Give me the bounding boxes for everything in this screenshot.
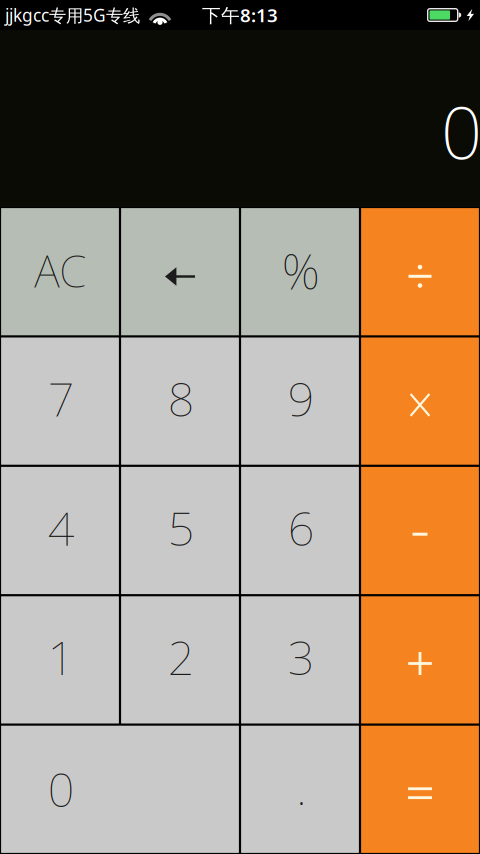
button[interactable]: 5 bbox=[121, 467, 239, 594]
button[interactable]: Divide bbox=[361, 208, 479, 335]
button[interactable]: 8 bbox=[121, 337, 239, 465]
staticText: jjkgcc专用5G专线 bbox=[5, 3, 140, 26]
staticText: 7 bbox=[48, 367, 75, 429]
button[interactable]: 9 bbox=[241, 337, 359, 465]
staticText: 0 bbox=[441, 83, 480, 179]
button[interactable]: Decimal point bbox=[241, 726, 359, 853]
button[interactable]: All Clear bbox=[1, 208, 119, 335]
button[interactable]: Equals bbox=[361, 726, 479, 853]
button[interactable]: Add bbox=[361, 596, 479, 723]
staticText: . bbox=[296, 756, 306, 818]
button[interactable]: 3 bbox=[241, 596, 359, 723]
staticText: 下午8:13 bbox=[202, 3, 278, 27]
button[interactable]: 0 bbox=[1, 726, 239, 853]
button[interactable]: Backspace bbox=[121, 208, 239, 335]
staticText: 8 bbox=[168, 367, 195, 429]
button[interactable]: 6 bbox=[241, 467, 359, 594]
staticText: % bbox=[282, 239, 320, 303]
staticText: 3 bbox=[288, 626, 315, 688]
button[interactable]: 4 bbox=[1, 467, 119, 594]
button[interactable]: Subtract bbox=[361, 467, 479, 594]
button[interactable]: 2 bbox=[121, 596, 239, 723]
staticText: 9 bbox=[288, 367, 315, 429]
staticText: 1 bbox=[48, 626, 75, 688]
staticText: 6 bbox=[288, 497, 315, 559]
staticText: 4 bbox=[48, 497, 75, 559]
button[interactable]: Percent bbox=[241, 208, 359, 335]
staticText: 5 bbox=[168, 497, 195, 559]
staticText: 2 bbox=[168, 626, 195, 688]
staticText: AC bbox=[34, 241, 86, 300]
button[interactable]: 7 bbox=[1, 337, 119, 465]
button[interactable]: Multiply bbox=[361, 337, 479, 465]
button[interactable]: 1 bbox=[1, 596, 119, 723]
staticText: 0 bbox=[48, 758, 75, 820]
